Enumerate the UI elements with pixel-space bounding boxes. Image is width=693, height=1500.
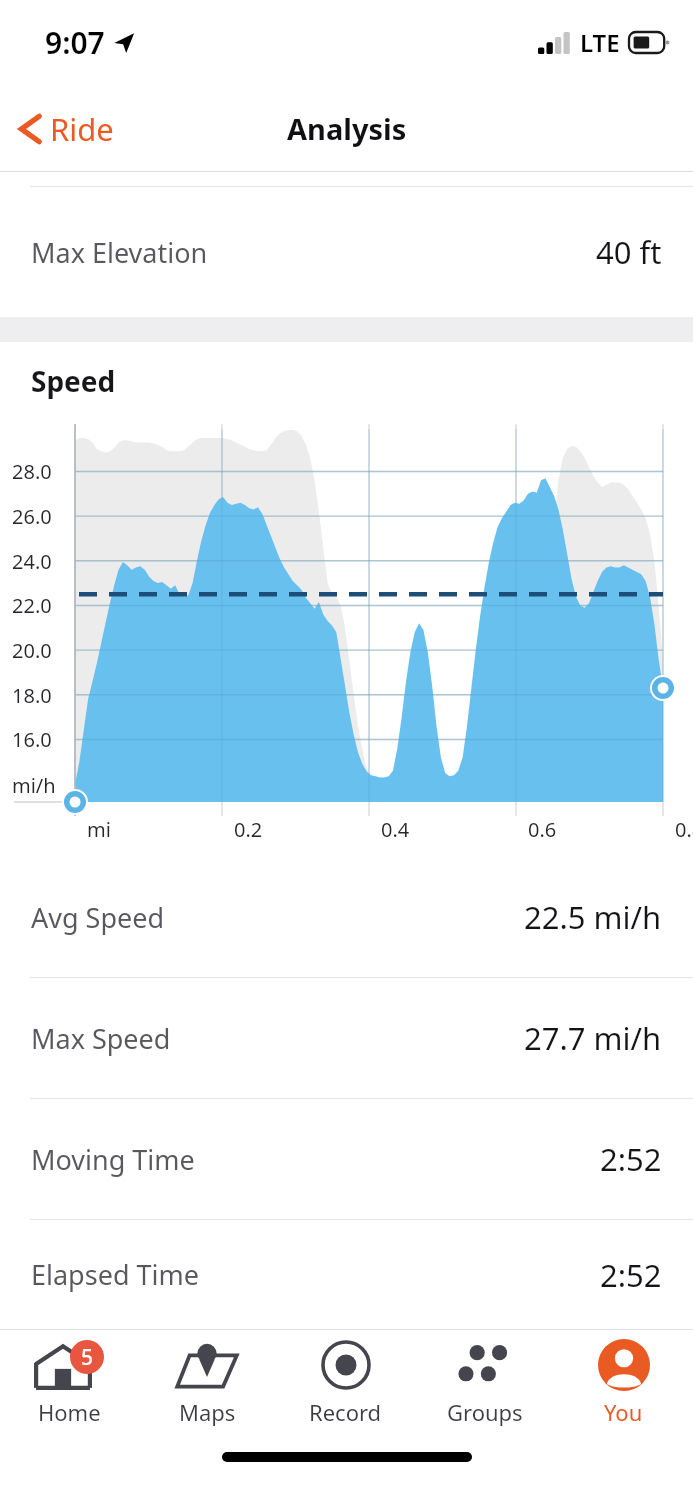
staticText: mi [87,816,111,843]
staticText: 2:52 [600,1254,662,1296]
button[interactable]: You [554,1330,693,1435]
staticText: Home [38,1397,101,1427]
staticText: Groups [447,1397,523,1427]
other: Groups [457,1343,513,1387]
other: Home [34,1340,104,1390]
button[interactable]: Max Elevation [0,187,693,317]
other: Maps [176,1341,238,1389]
staticText: 0.8 [675,816,693,843]
staticText: Max Elevation [31,234,208,271]
staticText: 28.0 [12,458,52,485]
other: You [598,1339,650,1391]
staticText: 16.0 [12,726,52,753]
button[interactable]: Avg Speed [0,857,693,977]
staticText: Maps [179,1397,236,1427]
button[interactable]: Home [0,1330,138,1435]
staticText: LTE [580,26,620,59]
staticText: 0.6 [528,816,557,843]
staticText: 18.0 [12,682,52,709]
staticText: 9:07 [45,22,105,63]
staticText: 24.0 [12,548,52,575]
button[interactable]: Moving Time [0,1099,693,1219]
button[interactable]: Max Speed [0,978,693,1098]
staticText: 5 [81,1343,94,1372]
button[interactable]: Elapsed Time [0,1220,693,1329]
staticText: Analysis [287,109,407,148]
staticText: 0.4 [381,816,410,843]
staticText: 27.7 mi/h [524,1017,662,1059]
staticText: Elapsed Time [31,1256,199,1293]
staticText: 0.2 [234,816,263,843]
other: Record [321,1340,371,1390]
staticText: 22.5 mi/h [524,896,662,938]
staticText: Ride [50,108,114,150]
staticText: Moving Time [31,1141,195,1178]
staticText: 2:52 [600,1138,662,1180]
button[interactable]: Maps [138,1330,276,1435]
staticText: mi/h [12,772,56,799]
button[interactable]: Ride [0,100,130,158]
staticText: 20.0 [12,637,52,664]
staticText: 40 ft [596,231,662,273]
staticText: 22.0 [12,592,52,619]
button[interactable]: Groups [415,1330,554,1435]
staticText: Record [309,1397,382,1427]
staticText: 26.0 [12,503,52,530]
staticText: Speed [31,362,116,400]
staticText: You [604,1397,643,1427]
staticText: Max Speed [31,1020,171,1057]
button[interactable]: Record [276,1330,415,1435]
staticText: Avg Speed [31,899,165,936]
